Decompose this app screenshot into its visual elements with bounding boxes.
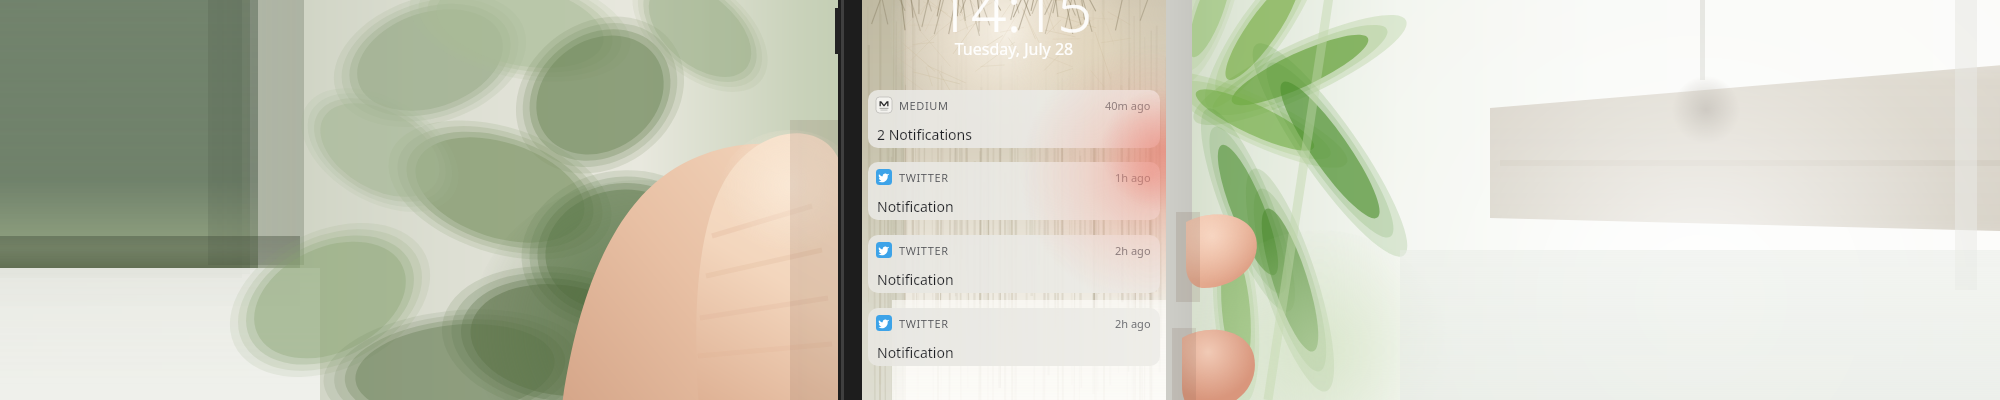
staticText: 40m ago (1105, 98, 1151, 113)
button[interactable]: Twitter (868, 162, 1160, 220)
staticText: Notification (877, 270, 954, 289)
staticText: 2h ago (1115, 316, 1151, 331)
staticText: 14:15 (862, 0, 1166, 50)
other: Medium (876, 97, 892, 113)
other: Twitter (876, 315, 892, 331)
staticText: TWITTER (899, 316, 949, 331)
staticText: TWITTER (899, 243, 949, 258)
staticText: MEDIUM (899, 98, 949, 113)
staticText: Tuesday, July 28 (862, 38, 1166, 60)
staticText: 2h ago (1115, 243, 1151, 258)
button[interactable]: Twitter (868, 308, 1160, 366)
staticText: 2 Notifications (877, 125, 972, 144)
staticText: 1h ago (1115, 170, 1151, 185)
other: Twitter (876, 169, 892, 185)
staticText: Notification (877, 197, 954, 216)
staticText: Notification (877, 343, 954, 362)
button[interactable]: Twitter (868, 235, 1160, 293)
button[interactable]: Medium (868, 90, 1160, 148)
staticText: TWITTER (899, 170, 949, 185)
other: Twitter (876, 242, 892, 258)
